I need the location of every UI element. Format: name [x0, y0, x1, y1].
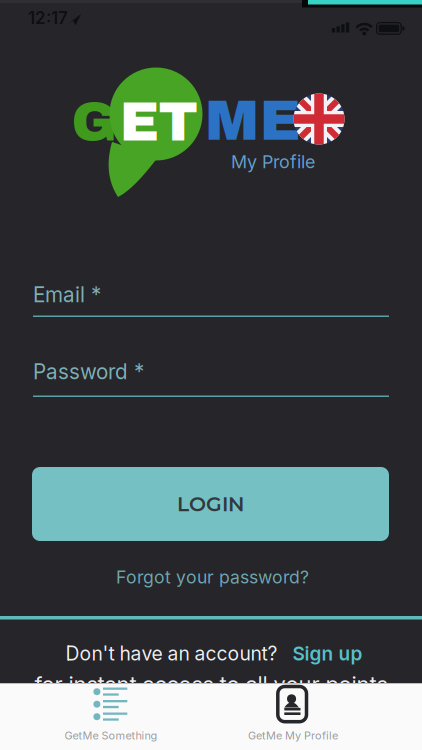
- staticText: My Profile: [231, 151, 315, 173]
- staticText: Forgot your password?: [116, 566, 309, 588]
- button[interactable]: LOGIN: [32, 467, 389, 541]
- staticText: GetMe Something: [64, 729, 157, 742]
- staticText: G: [71, 92, 117, 152]
- staticText: Password *: [33, 359, 144, 384]
- staticText: for instant access to all your points: [34, 671, 387, 698]
- staticText: ME: [204, 90, 300, 152]
- staticText: Email *: [33, 282, 101, 307]
- staticText: Don't have an account?: [65, 642, 277, 665]
- button[interactable]: Forgot your password?: [1, 566, 422, 588]
- staticText: Sign up: [292, 642, 362, 665]
- staticText: 12:17: [28, 8, 68, 28]
- button[interactable]: GetMe Something: [21, 688, 201, 750]
- button[interactable]: GetMe My Profile: [203, 688, 383, 750]
- button[interactable]: Don't have an account?: [3, 642, 422, 665]
- staticText: GetMe My Profile: [248, 729, 338, 742]
- staticText: LOGIN: [177, 492, 244, 516]
- staticText: ET: [119, 92, 197, 152]
